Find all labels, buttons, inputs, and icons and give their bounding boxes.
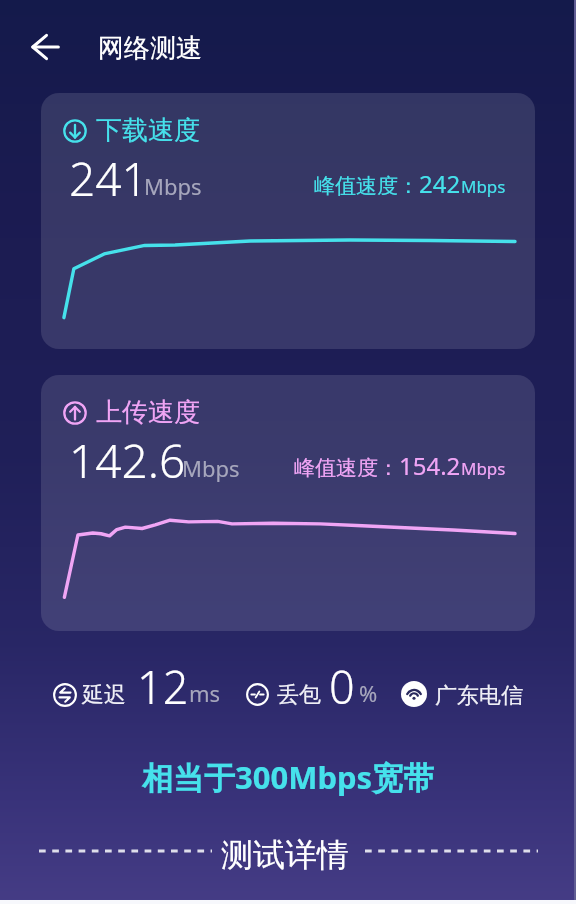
staticText: 丢包 — [277, 681, 321, 709]
staticText: 0 — [329, 656, 355, 717]
staticText: 154.2 — [399, 449, 461, 482]
staticText: 12 — [137, 656, 189, 717]
staticText: 测试详情 — [221, 835, 349, 875]
staticText: 峰值速度： — [294, 455, 399, 481]
staticText: 上传速度 — [96, 396, 200, 429]
staticText: % — [359, 678, 378, 708]
button[interactable]: Network statistics — [0, 631, 576, 721]
staticText: 延迟 — [82, 681, 126, 709]
staticText: Mbps — [182, 453, 240, 483]
staticText: 峰值速度： — [314, 173, 419, 199]
staticText: 242 — [419, 167, 461, 200]
button[interactable]: 测试详情 — [0, 815, 576, 867]
button[interactable]: 下载速度 — [41, 93, 535, 349]
staticText: 广东电信 — [435, 682, 523, 710]
staticText: 网络测速 — [98, 32, 202, 65]
staticText: ms — [189, 678, 221, 708]
button[interactable]: 上传速度 — [41, 375, 535, 631]
staticText: 相当于300Mbps宽带 — [142, 756, 435, 798]
staticText: Mbps — [144, 171, 202, 201]
staticText: Mbps — [461, 457, 506, 480]
staticText: 241 — [69, 147, 148, 210]
staticText: 下载速度 — [96, 114, 200, 147]
button[interactable]: Back — [19, 19, 75, 75]
staticText: Mbps — [461, 175, 506, 198]
staticText: 142.6 — [69, 429, 186, 492]
